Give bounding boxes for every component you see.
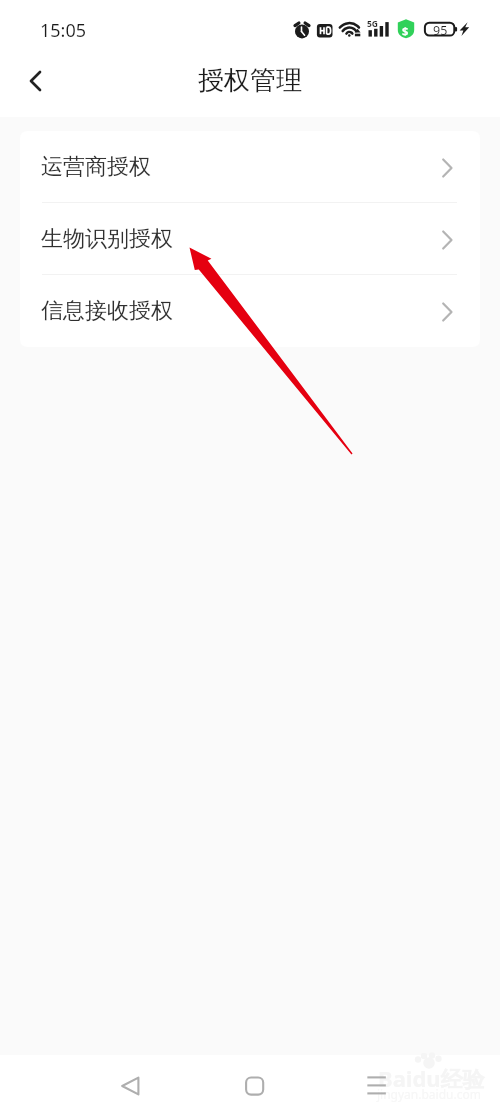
- button[interactable]: 运营商授权: [20, 131, 480, 203]
- staticText: 生物识别授权: [41, 225, 173, 253]
- staticText: 15:05: [40, 18, 87, 43]
- button[interactable]: Back: [106, 1062, 154, 1110]
- button[interactable]: Back: [13, 59, 58, 104]
- staticText: 运营商授权: [41, 153, 151, 181]
- staticText: 95: [433, 22, 448, 39]
- staticText: Baidu经验: [378, 1063, 485, 1093]
- staticText: 信息接收授权: [41, 297, 173, 325]
- staticText: jingyan.baidu.com: [377, 1086, 481, 1102]
- staticText: 授权管理: [198, 64, 302, 97]
- button[interactable]: Recent apps: [352, 1062, 400, 1110]
- staticText: 5G: [367, 18, 379, 30]
- button[interactable]: 生物识别授权: [20, 203, 480, 275]
- button[interactable]: 信息接收授权: [20, 275, 480, 347]
- button[interactable]: Home: [230, 1062, 278, 1110]
- staticText: $: [402, 23, 409, 38]
